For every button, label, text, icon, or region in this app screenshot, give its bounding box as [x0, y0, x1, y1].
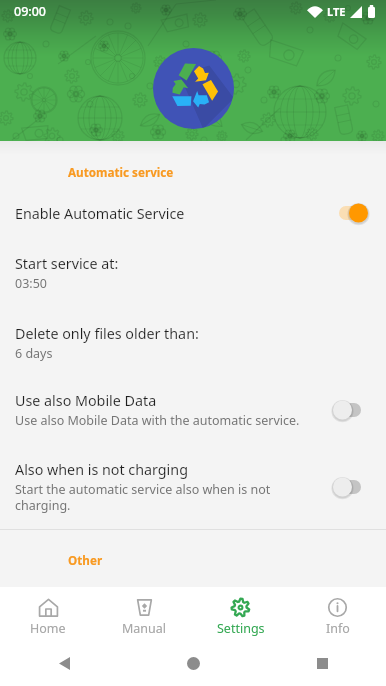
staticText: Start the automatic service also when is…: [15, 481, 271, 513]
staticText: 09:00: [14, 3, 47, 20]
button[interactable]: Settings: [192, 587, 289, 640]
button[interactable]: Start service at:: [0, 254, 386, 292]
staticText: Enable Automatic Service: [15, 204, 185, 223]
button[interactable]: Info: [289, 587, 386, 640]
staticText: Use also Mobile Data with the automatic …: [15, 412, 300, 429]
button[interactable]: Home: [177, 647, 209, 679]
staticText: Info: [326, 620, 350, 637]
staticText: LTE: [327, 4, 346, 19]
button[interactable]: Manual: [96, 587, 192, 640]
button[interactable]: Delete only files older than:: [0, 324, 386, 362]
staticText: Delete only files older than:: [15, 324, 199, 343]
button[interactable]: Recent apps: [306, 647, 338, 679]
button[interactable]: Enable Automatic Service: [0, 202, 386, 224]
staticText: 03:50: [15, 275, 47, 292]
staticText: Use also Mobile Data: [15, 391, 157, 410]
staticText: Also when is not charging: [15, 460, 188, 479]
staticText: Home: [30, 620, 66, 637]
staticText: Settings: [217, 620, 265, 637]
staticText: Other: [68, 552, 103, 568]
button[interactable]: Also when is not charging: [0, 460, 386, 513]
staticText: Manual: [122, 620, 167, 637]
staticText: 6 days: [15, 345, 53, 362]
staticText: Automatic service: [68, 164, 174, 180]
button[interactable]: Home: [0, 587, 96, 640]
staticText: Start service at:: [15, 254, 119, 273]
button[interactable]: Use also Mobile Data: [0, 391, 386, 429]
button[interactable]: Back: [48, 647, 80, 679]
